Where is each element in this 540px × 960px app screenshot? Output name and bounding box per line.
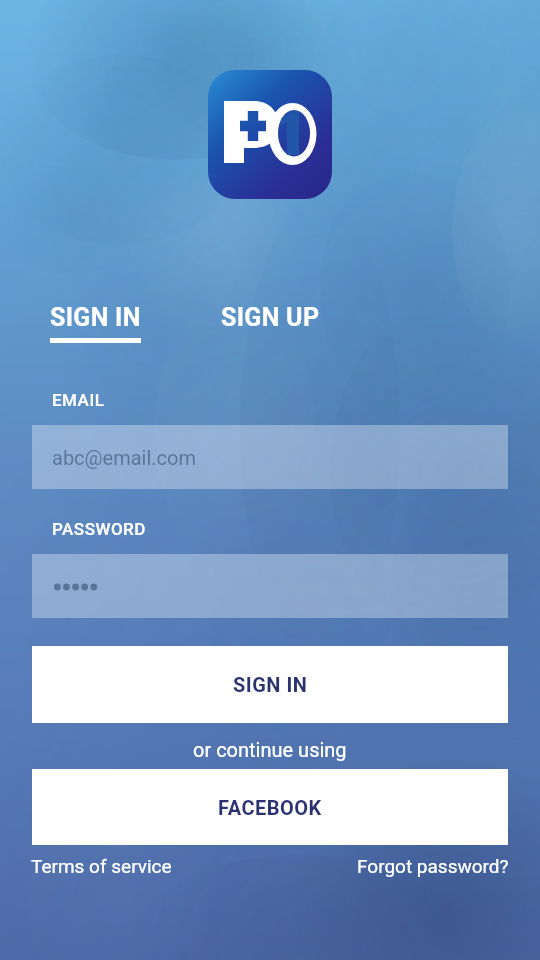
staticText: FACEBOOK — [218, 796, 322, 819]
staticText: SIGN IN — [233, 673, 308, 696]
button[interactable]: SIGN IN — [50, 303, 141, 343]
button[interactable]: abc@email.com — [32, 425, 508, 489]
button[interactable]: FACEBOOK — [32, 769, 508, 845]
staticText: SIGN UP — [221, 303, 320, 332]
staticText: PASSWORD — [52, 519, 146, 539]
staticText: EMAIL — [52, 390, 105, 410]
button[interactable]: SIGN UP — [221, 303, 320, 332]
button[interactable]: Forgot password? — [357, 855, 509, 877]
staticText: or continue using — [193, 738, 347, 761]
button[interactable]: SIGN IN — [32, 646, 508, 723]
staticText: SIGN IN — [50, 303, 141, 332]
other: P+1 logo — [208, 70, 332, 199]
staticText: abc@email.com — [52, 446, 196, 469]
button[interactable]: Terms of service — [31, 855, 172, 877]
button[interactable] — [32, 554, 508, 618]
